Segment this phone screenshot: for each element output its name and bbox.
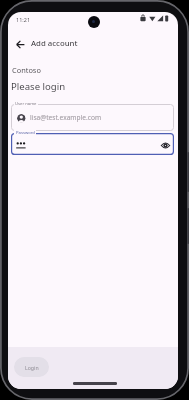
staticText: lisa@test.example.com	[30, 113, 102, 122]
button[interactable]: lisa@test.example.com	[11, 104, 174, 131]
button[interactable]: Login	[14, 357, 49, 377]
staticText: Login	[25, 364, 39, 371]
staticText: Contoso	[12, 65, 41, 75]
button[interactable]	[12, 35, 29, 52]
staticText: Please login	[11, 80, 66, 93]
staticText: 11:21	[16, 16, 31, 23]
staticText: Add account	[31, 38, 78, 49]
staticText: User name	[15, 101, 37, 107]
button[interactable]	[11, 133, 174, 155]
staticText: Password	[16, 130, 35, 136]
